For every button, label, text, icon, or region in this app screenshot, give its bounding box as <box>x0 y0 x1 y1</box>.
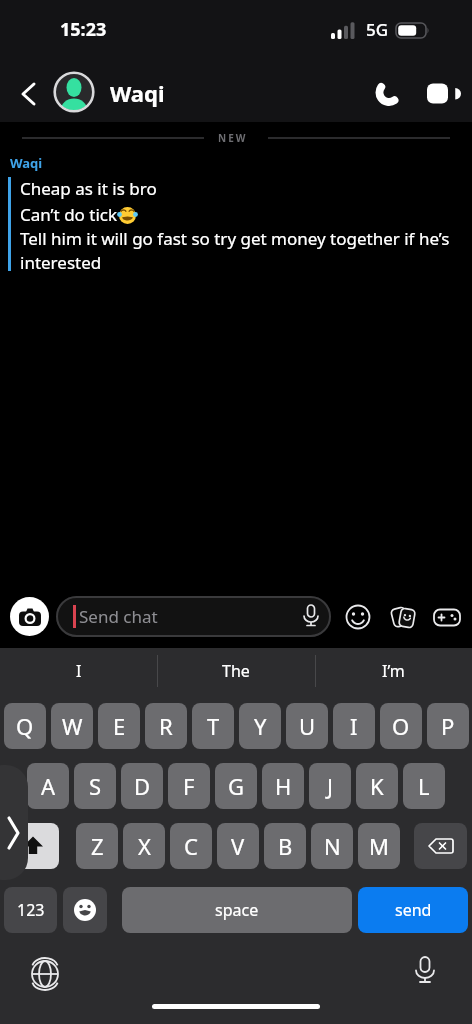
staticText: 5G <box>366 18 389 41</box>
button[interactable] <box>6 823 59 869</box>
staticText: D <box>134 771 151 801</box>
staticText: A <box>41 771 56 801</box>
staticText: C <box>184 831 198 861</box>
staticText: P <box>441 711 455 741</box>
staticText: space <box>215 899 259 921</box>
staticText: Q <box>16 711 34 741</box>
button[interactable] <box>343 602 373 632</box>
staticText: Send chat <box>79 605 158 628</box>
staticText: I <box>76 660 82 682</box>
staticText: Cheap as it is bro <box>20 177 157 200</box>
button[interactable]: S <box>74 763 116 809</box>
staticText: send <box>395 899 432 921</box>
button[interactable]: H <box>262 763 304 809</box>
button[interactable]: Send chat <box>56 596 331 637</box>
button[interactable]: K <box>356 763 398 809</box>
staticText: NEW <box>218 131 248 145</box>
button[interactable]: D <box>121 763 163 809</box>
staticText: Y <box>254 711 267 741</box>
button[interactable]: N <box>311 823 353 869</box>
button[interactable]: I’m <box>315 648 472 694</box>
staticText: T <box>207 711 220 741</box>
button[interactable]: X <box>123 823 165 869</box>
button[interactable] <box>53 71 95 113</box>
button[interactable]: 123 <box>4 887 57 933</box>
staticText: R <box>159 711 173 741</box>
staticText: L <box>418 771 430 801</box>
button[interactable]: L <box>403 763 445 809</box>
button[interactable]: Y <box>239 703 281 749</box>
button[interactable]: E <box>98 703 140 749</box>
button[interactable] <box>414 823 467 869</box>
staticText: Waqi <box>110 78 165 108</box>
button[interactable] <box>10 76 46 112</box>
staticText: I <box>350 711 358 741</box>
button[interactable] <box>410 956 440 986</box>
staticText: K <box>370 771 384 801</box>
button[interactable]: C <box>170 823 212 869</box>
button[interactable] <box>388 602 418 632</box>
button[interactable] <box>28 958 62 992</box>
staticText: S <box>89 771 102 801</box>
button[interactable]: P <box>427 703 469 749</box>
staticText: The <box>222 660 250 682</box>
button[interactable]: space <box>122 887 352 933</box>
button[interactable]: A <box>27 763 69 809</box>
staticText: Z <box>91 831 104 861</box>
button[interactable]: Z <box>76 823 118 869</box>
button[interactable] <box>431 602 463 632</box>
staticText: E <box>113 711 126 741</box>
button[interactable]: G <box>215 763 257 809</box>
button[interactable]: J <box>309 763 351 809</box>
button[interactable]: send <box>358 887 468 933</box>
button[interactable]: The <box>157 648 315 694</box>
button[interactable]: I <box>0 648 157 694</box>
staticText: 123 <box>17 899 45 921</box>
staticText: Can’t do tick <box>20 203 118 226</box>
button[interactable]: Q <box>4 703 46 749</box>
button[interactable]: M <box>358 823 400 869</box>
staticText: N <box>324 831 341 861</box>
staticText: F <box>183 771 195 801</box>
staticText: M <box>369 831 389 861</box>
button[interactable]: V <box>217 823 259 869</box>
button[interactable]: O <box>380 703 422 749</box>
staticText: U <box>299 711 316 741</box>
staticText: 15:23 <box>60 17 107 42</box>
staticText: interested <box>20 251 102 274</box>
button[interactable] <box>63 887 107 933</box>
staticText: Waqi <box>10 154 43 172</box>
staticText: H <box>275 771 292 801</box>
staticText: G <box>228 771 245 801</box>
button[interactable]: B <box>264 823 306 869</box>
staticText: W <box>62 711 83 741</box>
button[interactable] <box>10 597 49 636</box>
button[interactable] <box>372 78 404 110</box>
staticText: I’m <box>382 660 405 682</box>
button[interactable]: W <box>51 703 93 749</box>
button[interactable]: U <box>286 703 328 749</box>
button[interactable]: F <box>168 763 210 809</box>
button[interactable] <box>426 80 460 108</box>
staticText: X <box>138 831 151 861</box>
staticText: Tell him it will go fast so try get mone… <box>20 227 450 250</box>
button[interactable]: T <box>192 703 234 749</box>
staticText: B <box>278 831 293 861</box>
button[interactable]: I <box>333 703 375 749</box>
staticText: O <box>392 711 410 741</box>
button[interactable]: R <box>145 703 187 749</box>
staticText: V <box>231 831 245 861</box>
staticText: J <box>327 771 334 801</box>
